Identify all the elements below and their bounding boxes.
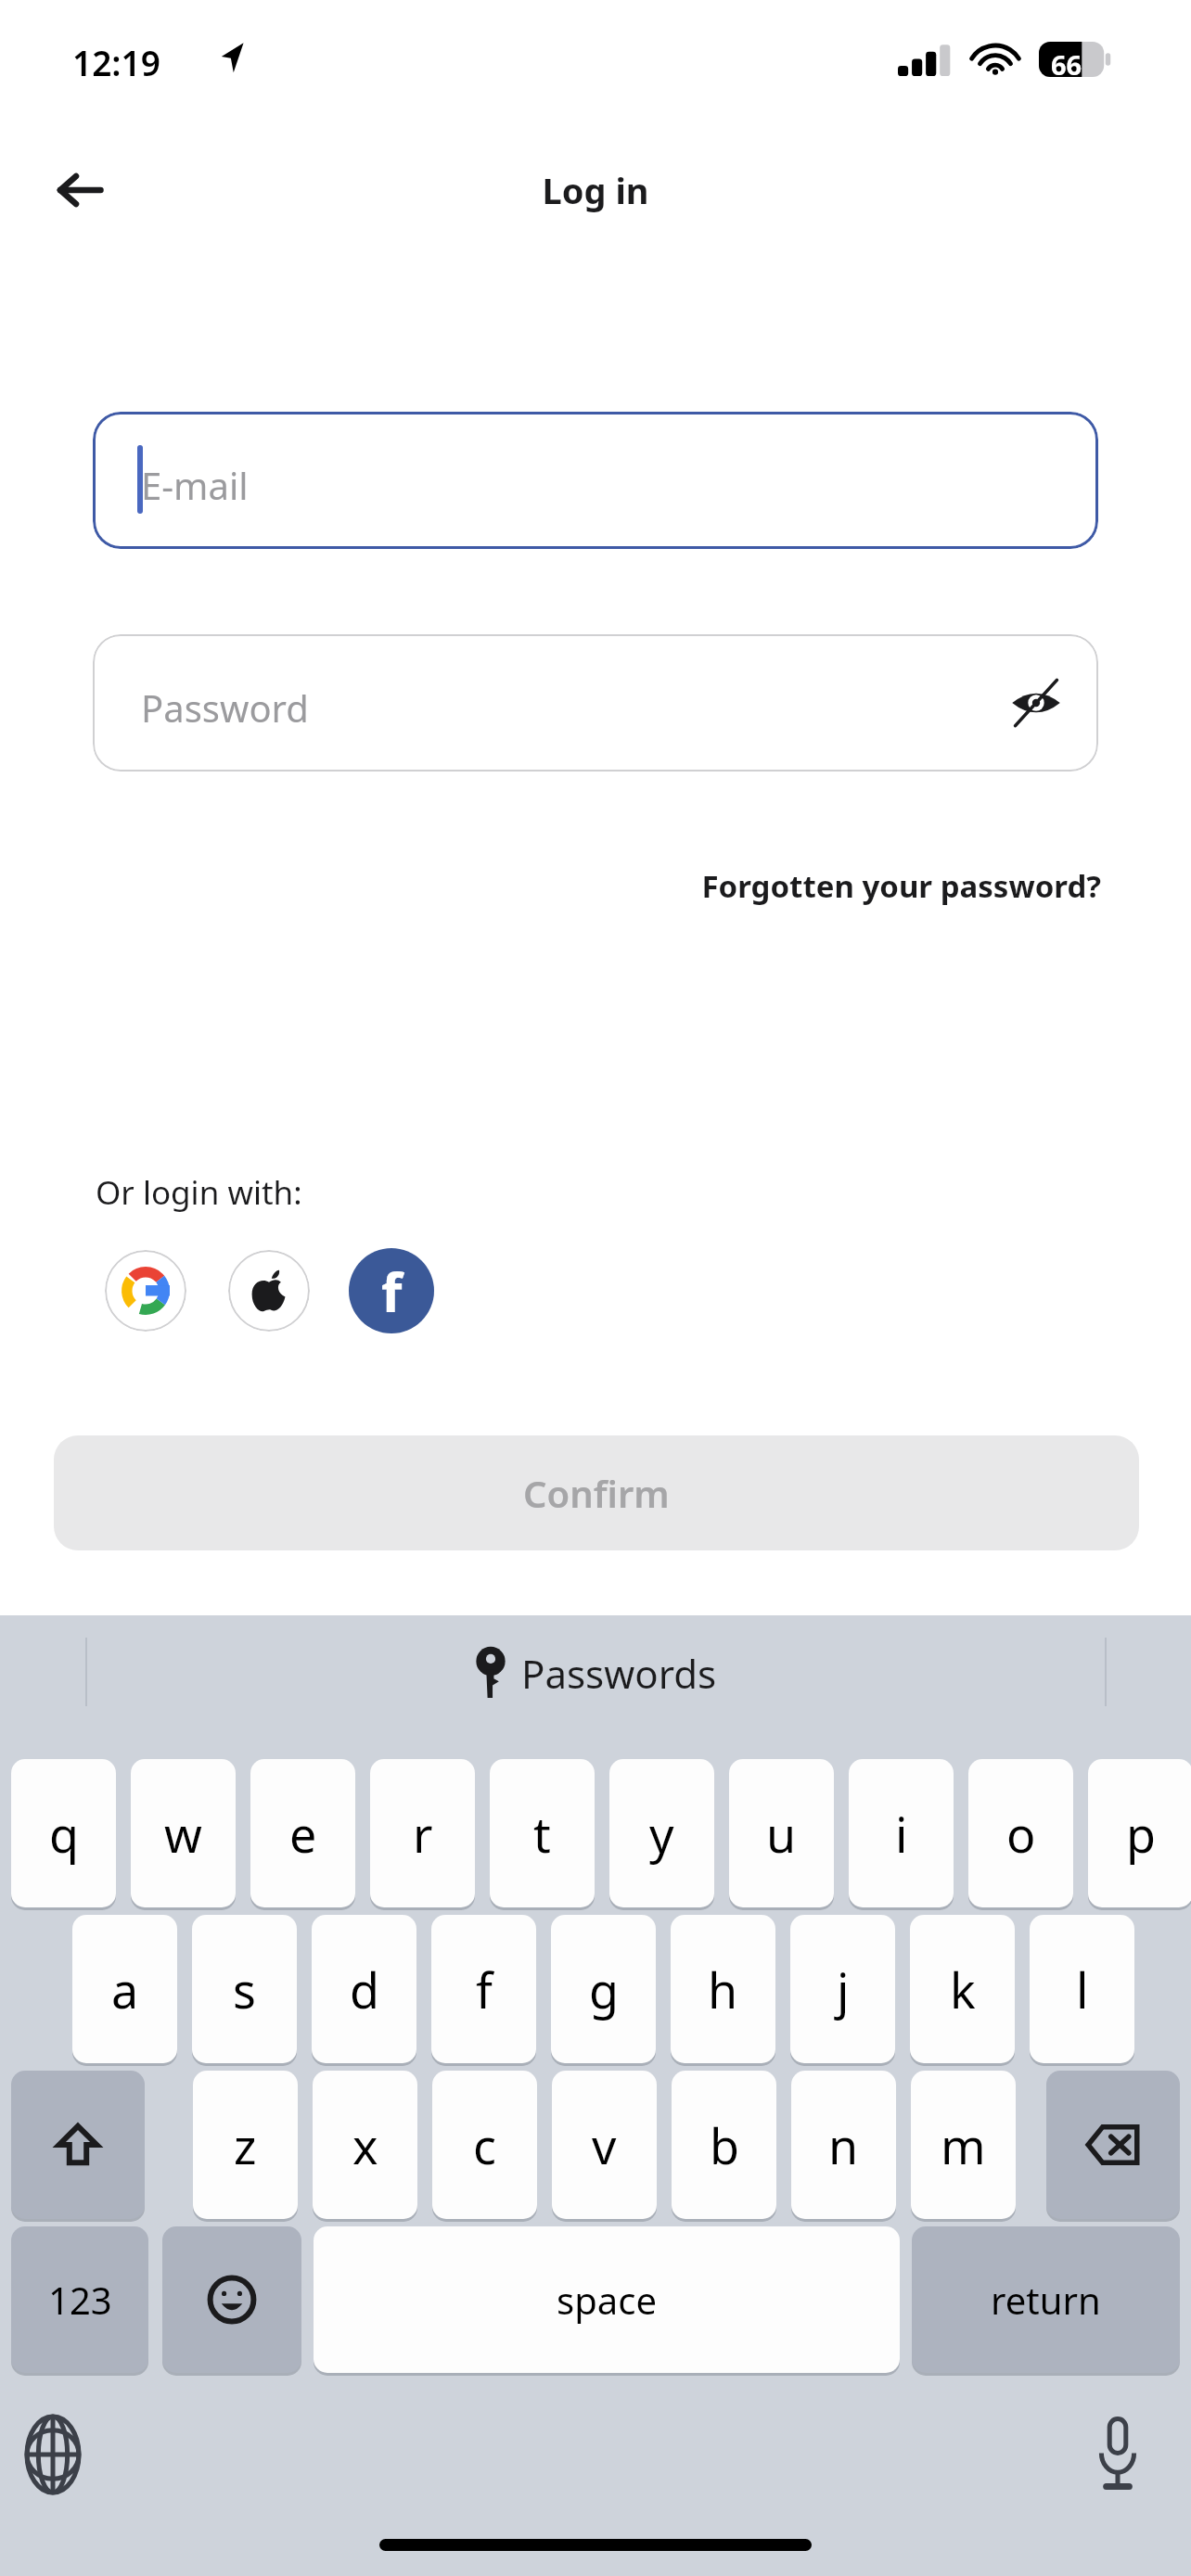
staticText: Passwords <box>521 1647 717 1700</box>
staticText: b <box>710 2112 739 2178</box>
button[interactable]: Show password <box>1000 667 1072 739</box>
button[interactable]: Dictation <box>1076 2413 1159 2496</box>
button[interactable]: j <box>790 1918 895 2066</box>
staticText: return <box>991 2275 1101 2325</box>
staticText: t <box>533 1801 551 1867</box>
button[interactable]: Password <box>93 634 1098 772</box>
button[interactable]: z <box>193 2073 298 2222</box>
button[interactable]: s <box>192 1918 297 2066</box>
button[interactable]: Back <box>37 147 122 233</box>
staticText: j <box>837 1957 850 2022</box>
button[interactable]: y <box>609 1762 714 1910</box>
staticText: m <box>941 2112 986 2178</box>
staticText: a <box>111 1957 139 2022</box>
button[interactable]: Backspace <box>1046 2073 1180 2222</box>
staticText: u <box>766 1801 797 1867</box>
button[interactable]: Sign in with Google <box>105 1250 186 1332</box>
button[interactable]: Sign in with Facebook <box>349 1248 434 1333</box>
staticText: space <box>557 2275 657 2325</box>
staticText: i <box>895 1801 908 1867</box>
button[interactable]: u <box>729 1762 834 1910</box>
staticText: y <box>649 1801 674 1867</box>
button[interactable]: Emoji <box>162 2229 301 2376</box>
staticText: k <box>950 1957 976 2022</box>
button[interactable]: space <box>314 2229 900 2376</box>
staticText: e <box>289 1801 317 1867</box>
staticText: 12:19 <box>72 39 160 85</box>
button[interactable]: 123 <box>11 2229 148 2376</box>
button[interactable]: n <box>791 2073 896 2222</box>
button[interactable]: h <box>671 1918 775 2066</box>
button[interactable]: c <box>432 2073 537 2222</box>
button[interactable]: l <box>1030 1918 1134 2066</box>
staticText: r <box>413 1801 433 1867</box>
staticText: l <box>1076 1957 1089 2022</box>
button[interactable]: v <box>552 2073 657 2222</box>
staticText: v <box>592 2112 617 2178</box>
button[interactable]: g <box>551 1918 656 2066</box>
staticText: o <box>1006 1801 1036 1867</box>
button[interactable]: i <box>849 1762 954 1910</box>
staticText: f <box>381 1255 403 1328</box>
staticText: E-mail <box>141 460 249 510</box>
button[interactable]: x <box>313 2073 417 2222</box>
staticText: n <box>828 2112 859 2178</box>
staticText: 123 <box>48 2275 112 2325</box>
button[interactable]: k <box>910 1918 1015 2066</box>
button[interactable]: Change keyboard <box>11 2413 95 2496</box>
button[interactable]: e <box>250 1762 355 1910</box>
button[interactable]: Shift <box>11 2073 145 2222</box>
staticText: w <box>164 1801 202 1867</box>
button[interactable]: m <box>911 2073 1016 2222</box>
staticText: Forgotten your password? <box>0 865 1101 907</box>
button[interactable]: E-mail <box>93 412 1098 549</box>
button[interactable]: Confirm <box>54 1435 1139 1550</box>
button[interactable]: r <box>370 1762 475 1910</box>
staticText: x <box>352 2112 378 2178</box>
button[interactable]: d <box>312 1918 416 2066</box>
staticText: Log in <box>0 166 1191 214</box>
staticText: h <box>708 1957 738 2022</box>
button[interactable]: f <box>431 1918 536 2066</box>
staticText: q <box>49 1801 79 1867</box>
button[interactable]: Sign in with Apple <box>228 1250 310 1332</box>
staticText: z <box>234 2112 257 2178</box>
staticText: 66 <box>1051 46 1082 83</box>
button[interactable]: q <box>11 1762 116 1910</box>
button[interactable]: w <box>131 1762 236 1910</box>
button[interactable]: b <box>672 2073 776 2222</box>
button[interactable]: t <box>490 1762 595 1910</box>
staticText: g <box>589 1957 619 2022</box>
button[interactable]: return <box>912 2229 1180 2376</box>
staticText: Or login with: <box>96 1170 302 1215</box>
staticText: p <box>1126 1801 1156 1867</box>
staticText: c <box>473 2112 496 2178</box>
staticText: Password <box>141 682 309 733</box>
staticText: Confirm <box>523 1468 670 1518</box>
staticText: s <box>233 1957 256 2022</box>
button[interactable]: a <box>72 1918 177 2066</box>
button[interactable]: p <box>1088 1762 1191 1910</box>
button[interactable]: o <box>968 1762 1073 1910</box>
staticText: d <box>350 1957 379 2022</box>
staticText: f <box>476 1957 493 2022</box>
